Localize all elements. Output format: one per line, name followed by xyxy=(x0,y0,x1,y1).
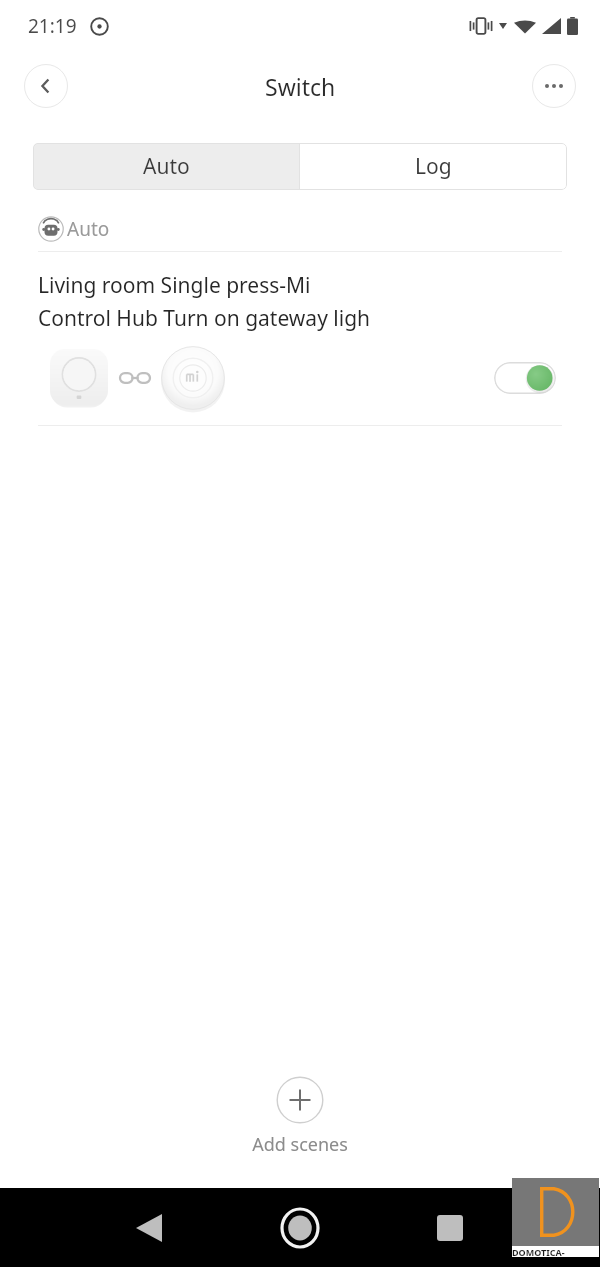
staticText: Control Hub Turn on gateway ligh xyxy=(38,304,371,333)
staticText: Log xyxy=(415,152,452,181)
staticText: Auto xyxy=(67,216,110,242)
staticText: Auto xyxy=(143,152,190,181)
staticText: Switch xyxy=(265,71,336,102)
button[interactable]: More options xyxy=(532,64,576,108)
button[interactable]: Auto xyxy=(33,143,299,190)
button[interactable]: Back xyxy=(123,1202,175,1254)
button[interactable]: Recent apps xyxy=(424,1202,476,1254)
staticText: Add scenes xyxy=(252,1132,348,1157)
button[interactable]: Add scenes xyxy=(0,1076,600,1157)
button[interactable]: Toggle scene on xyxy=(494,362,556,394)
button[interactable]: Living room Single press-Mi xyxy=(0,252,600,425)
button[interactable]: Home xyxy=(272,1200,328,1256)
staticText: 21:19 xyxy=(28,13,77,39)
button[interactable]: Log xyxy=(300,143,567,190)
button[interactable]: Back xyxy=(24,64,68,108)
staticText: DOMOTICA-BLOG.NL xyxy=(512,1246,599,1257)
staticText: Living room Single press-Mi xyxy=(38,271,311,300)
